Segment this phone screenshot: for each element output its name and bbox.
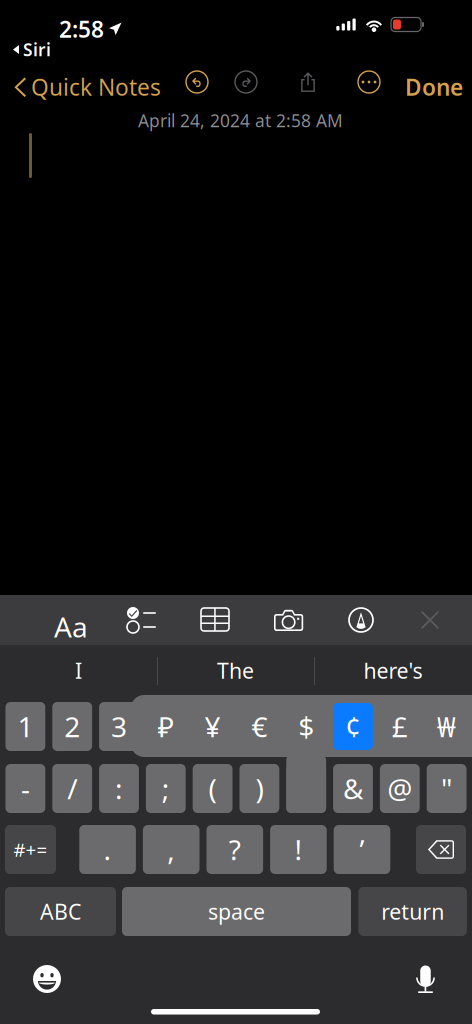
staticText: 4 [158,708,174,745]
staticText: 0 [439,708,455,745]
staticText: / [67,770,77,807]
button[interactable]: 0 [427,702,466,751]
button[interactable]: space [122,887,351,936]
button[interactable]: 5 [193,702,232,751]
button[interactable]: & [333,764,373,813]
button[interactable]: 8 [333,702,373,751]
staticText: 2 [64,708,80,745]
button[interactable]: . [79,825,136,874]
staticText: Done [405,72,463,102]
staticText: @ [387,770,412,807]
button[interactable]: @ [380,764,420,813]
button[interactable]: Undo [186,71,208,93]
staticText: £ [392,708,408,745]
button[interactable]: ’ [334,825,390,874]
staticText: 6 [251,708,267,745]
staticText: , [167,831,175,868]
button[interactable]: 1 [5,702,45,751]
staticText: ¢ [345,708,361,745]
button[interactable]: The [157,645,314,696]
button[interactable]: Format [54,608,88,645]
staticText: 9 [392,708,408,745]
button[interactable]: / [52,764,92,813]
staticText: ’ [359,831,364,868]
button[interactable]: Table [201,608,229,631]
staticText: here's [363,656,422,685]
button[interactable]: Redo [235,71,257,93]
button[interactable]: Delete [416,825,466,874]
button[interactable]: 2 [52,702,92,751]
button[interactable]: Markup [349,608,373,632]
staticText: ( [209,770,217,807]
button[interactable]: Dictation [414,965,437,995]
staticText: #+= [13,837,47,862]
button[interactable]: Share [297,70,319,94]
staticText: ; [162,770,170,807]
staticText: 8 [345,708,361,745]
staticText: & [343,770,363,807]
staticText: - [21,770,30,807]
button[interactable]: #+= [5,825,56,874]
button[interactable]: ABC [5,887,116,936]
staticText: ) [255,770,263,807]
button[interactable]: ; [146,764,186,813]
staticText: The [217,656,254,685]
button[interactable]: Close keyboard [418,608,442,632]
button[interactable]: $ [286,764,326,813]
button[interactable]: 9 [380,702,420,751]
staticText: ! [294,831,302,868]
staticText: Siri [23,38,51,61]
staticText: 1 [17,708,33,745]
button[interactable]: Camera [274,609,303,631]
staticText: . [104,831,112,868]
staticText: ? [229,831,241,868]
button[interactable]: I [0,645,157,696]
button[interactable]: Done [405,66,463,108]
button[interactable]: 7 [286,702,326,751]
button[interactable]: - [5,764,45,813]
staticText: 2:58 [59,14,104,44]
staticText: space [208,897,265,926]
staticText: " [441,770,452,807]
button[interactable]: , [143,825,199,874]
staticText: $ [298,708,314,745]
button[interactable]: Checklist [127,607,156,633]
button[interactable]: 3 [99,702,139,751]
button[interactable]: ) [239,764,279,813]
button[interactable]: ( [193,764,232,813]
button[interactable]: ? [206,825,263,874]
staticText: ¥ [205,708,221,745]
button[interactable]: 4 [146,702,186,751]
button[interactable]: Emoji [33,965,61,993]
button[interactable]: return [358,887,467,936]
staticText: ABC [40,897,81,926]
button[interactable]: here's [314,645,472,696]
staticText: : [115,770,123,807]
staticText: April 24, 2024 at 2:58 AM [138,109,343,132]
staticText: return [381,897,444,926]
button[interactable]: 6 [239,702,279,751]
button[interactable]: " [427,764,466,813]
staticText: I [75,656,82,685]
staticText: 3 [111,708,127,745]
staticText: Quick Notes [31,72,161,102]
staticText: ₽ [158,708,174,745]
staticText: 7 [298,708,314,745]
staticText: ₩ [437,708,456,745]
staticText: 5 [205,708,221,745]
staticText: Aa [54,608,88,645]
staticText: € [251,708,267,745]
button[interactable]: More [358,71,380,93]
button[interactable]: ! [270,825,327,874]
button[interactable]: : [99,764,139,813]
button[interactable]: Quick Notes [14,66,161,108]
